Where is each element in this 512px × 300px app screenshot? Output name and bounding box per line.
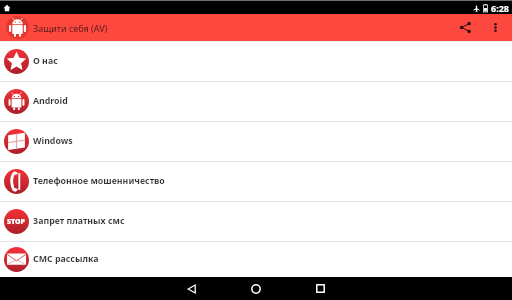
button[interactable]: СМС рассылка xyxy=(0,241,512,277)
button[interactable]: Защити себя (AV) xyxy=(0,14,116,41)
staticText: Windows xyxy=(33,135,73,147)
button[interactable]: Windows xyxy=(0,121,512,161)
button[interactable]: STOP xyxy=(0,201,512,241)
staticText: STOP xyxy=(7,217,26,227)
button[interactable]: Recents xyxy=(288,277,352,300)
staticText: Android xyxy=(33,95,68,107)
staticText: Телефонное мошенничество xyxy=(33,175,165,187)
button[interactable]: Home xyxy=(224,277,288,300)
staticText: О нас xyxy=(33,55,58,67)
button[interactable]: О нас xyxy=(0,41,512,81)
button[interactable]: Back xyxy=(160,277,224,300)
staticText: Защити себя (AV) xyxy=(33,22,108,34)
button[interactable]: Android xyxy=(0,81,512,121)
button[interactable]: More options xyxy=(483,15,508,40)
staticText: СМС рассылка xyxy=(33,253,99,265)
button[interactable]: Телефонное мошенничество xyxy=(0,161,512,201)
staticText: 6:28 xyxy=(491,2,509,14)
staticText: Запрет платных смс xyxy=(33,215,125,227)
button[interactable]: Share xyxy=(452,14,479,41)
